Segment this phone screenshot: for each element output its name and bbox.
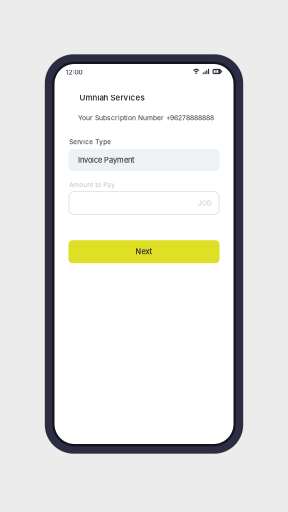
button[interactable]: Invoice Payment	[68, 149, 219, 171]
staticText: Service Type	[69, 138, 111, 146]
staticText: 12:00	[65, 68, 82, 76]
button[interactable]: JOD	[68, 191, 219, 215]
staticText: Amount to Pay	[69, 181, 115, 189]
button[interactable]: Next	[68, 240, 219, 263]
staticText: Your Subscription Number +96278888888	[78, 114, 214, 122]
staticText: Umniah Services	[79, 93, 144, 102]
staticText: JOD	[198, 199, 212, 207]
staticText: Invoice Payment	[78, 155, 134, 164]
staticText: Next	[135, 247, 152, 256]
